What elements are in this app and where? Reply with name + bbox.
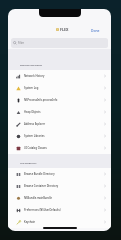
- staticText: Address Explorer: [24, 122, 103, 126]
- staticText: Filter: [18, 41, 25, 45]
- button[interactable]: Done: [86, 26, 111, 34]
- staticText: System Log: [24, 86, 103, 90]
- button[interactable]: UI Catalog Classes: [8, 142, 111, 154]
- staticText: UI Catalog Classes: [24, 146, 103, 150]
- staticText: Keychain: [24, 220, 103, 224]
- button[interactable]: Filter: [11, 38, 108, 48]
- button[interactable]: NSBundle.mainBundle: [8, 192, 111, 204]
- staticText: Done: [91, 28, 100, 32]
- button[interactable]: System Log: [8, 82, 111, 94]
- staticText: FLEX: [60, 27, 69, 32]
- button[interactable]: Network History: [8, 70, 111, 82]
- staticText: PROCESS AND EVENTS: [20, 64, 42, 67]
- button[interactable]: System Libraries: [8, 130, 111, 142]
- staticText: Preferences (NSUserDefaults): [24, 208, 103, 212]
- staticText: APP SHORTCUTS: [20, 162, 37, 165]
- button[interactable]: Address Explorer: [8, 118, 111, 130]
- staticText: Network History: [24, 74, 103, 78]
- button[interactable]: Browse Container Directory: [8, 180, 111, 192]
- button[interactable]: Browse Bundle Directory: [8, 168, 111, 180]
- staticText: NSProcessInfo.processInfo: [24, 98, 103, 102]
- button[interactable]: Preferences (NSUserDefaults): [8, 204, 111, 216]
- staticText: Heap Objects: [24, 110, 103, 114]
- staticText: System Libraries: [24, 134, 103, 138]
- button[interactable]: Heap Objects: [8, 106, 111, 118]
- staticText: Browse Bundle Directory: [24, 172, 103, 176]
- staticText: Browse Container Directory: [24, 184, 103, 188]
- button[interactable]: Keychain: [8, 216, 111, 228]
- button[interactable]: NSProcessInfo.processInfo: [8, 94, 111, 106]
- button[interactable]: FLEX: [56, 27, 69, 32]
- staticText: NSBundle.mainBundle: [24, 196, 103, 200]
